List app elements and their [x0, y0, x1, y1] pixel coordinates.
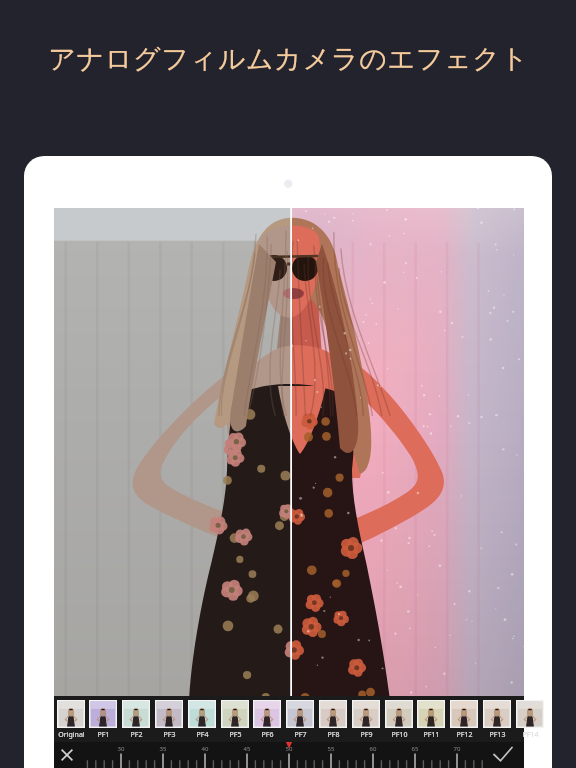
button[interactable]	[221, 700, 249, 728]
staticText: PF11	[411, 730, 452, 740]
staticText: 30	[111, 745, 131, 753]
button[interactable]	[286, 700, 314, 728]
staticText: PF4	[182, 730, 223, 740]
button[interactable]	[450, 700, 478, 728]
staticText: 65	[405, 745, 425, 753]
staticText: PF9	[346, 730, 387, 740]
button[interactable]	[57, 700, 85, 728]
button[interactable]	[352, 700, 380, 728]
button[interactable]	[483, 700, 511, 728]
staticText: PF5	[215, 730, 256, 740]
button[interactable]	[319, 700, 347, 728]
staticText: PF14	[510, 730, 551, 740]
button[interactable]: Apply	[490, 742, 516, 768]
staticText: 60	[363, 745, 383, 753]
staticText: 35	[153, 745, 173, 753]
staticText: PF2	[116, 730, 157, 740]
staticText: 50	[279, 745, 299, 753]
staticText: PF10	[379, 730, 420, 740]
button[interactable]	[89, 700, 117, 728]
staticText: PF12	[444, 730, 485, 740]
staticText: PF7	[280, 730, 321, 740]
staticText: PF6	[247, 730, 288, 740]
staticText: 55	[321, 745, 341, 753]
button[interactable]	[155, 700, 183, 728]
button[interactable]: Cancel	[54, 742, 80, 768]
button[interactable]	[122, 700, 150, 728]
staticText: PF8	[313, 730, 354, 740]
staticText: アナログフィルムカメラのエフェクト	[48, 42, 529, 76]
button[interactable]	[417, 700, 445, 728]
button[interactable]	[516, 700, 544, 728]
staticText: 45	[237, 745, 257, 753]
button[interactable]	[253, 700, 281, 728]
staticText: PF3	[149, 730, 190, 740]
staticText: 70	[447, 745, 467, 753]
staticText: Original	[51, 730, 92, 740]
staticText: 40	[195, 745, 215, 753]
staticText: PF13	[477, 730, 518, 740]
button[interactable]	[385, 700, 413, 728]
staticText: PF1	[83, 730, 124, 740]
button[interactable]	[188, 700, 216, 728]
